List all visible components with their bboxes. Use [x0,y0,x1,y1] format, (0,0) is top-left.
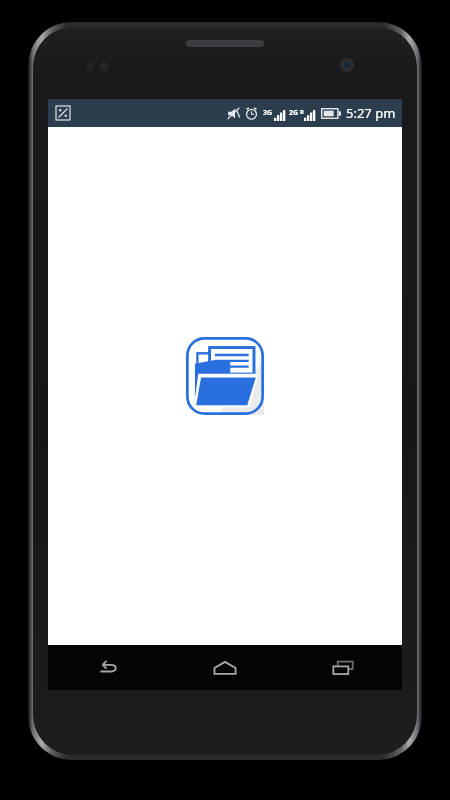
staticText: 5:27 pm [346,104,396,122]
button[interactable]: Back [48,645,166,690]
button[interactable]: Home [166,645,284,690]
staticText: R [300,108,304,116]
button[interactable]: App logo [186,337,264,415]
staticText: 3G [263,108,273,118]
button[interactable]: Recent apps [284,645,402,690]
staticText: 2G [289,108,299,118]
